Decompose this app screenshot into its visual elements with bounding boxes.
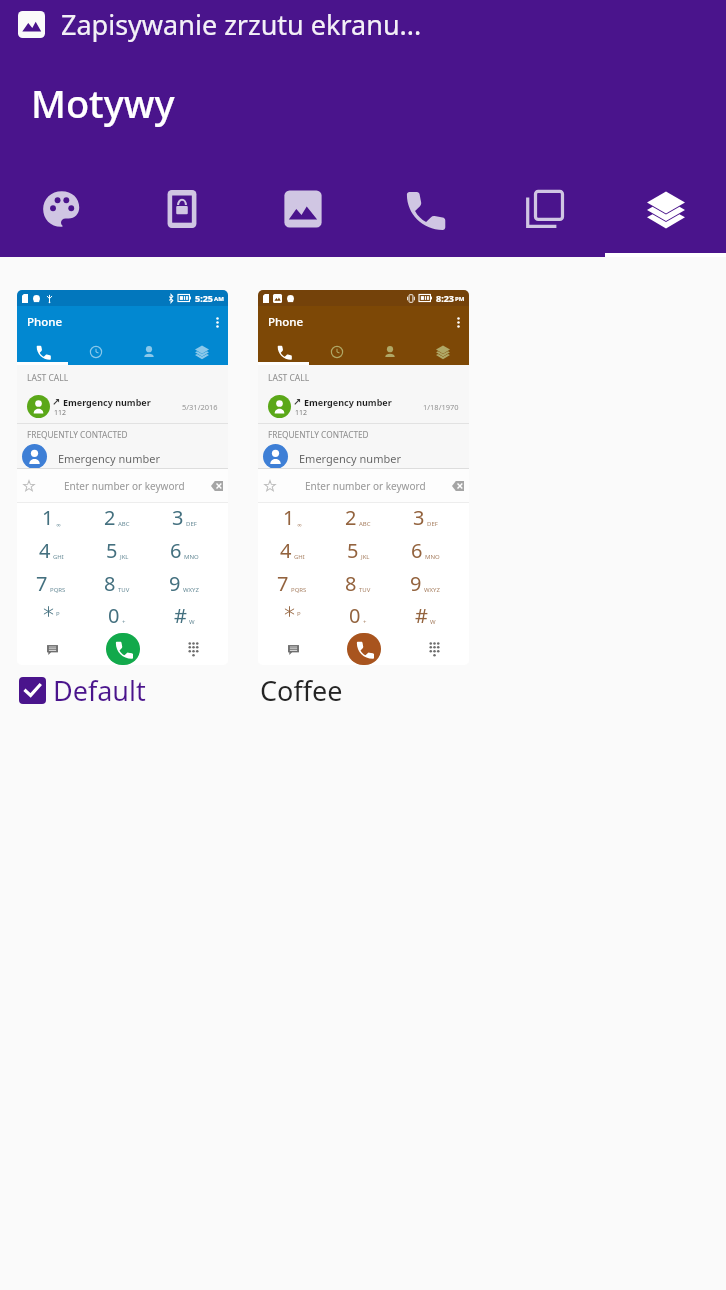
staticText: 2 xyxy=(345,504,357,531)
staticText: 0 xyxy=(108,602,120,629)
staticText: Motywy xyxy=(31,77,175,129)
staticText: TUV xyxy=(118,586,130,594)
staticText: MNO xyxy=(184,553,199,561)
staticText: Default xyxy=(53,672,146,709)
staticText: JKL xyxy=(361,553,370,561)
staticText: # xyxy=(174,602,187,629)
staticText: Enter number or keyword xyxy=(305,479,426,493)
staticText: ∞ xyxy=(56,521,61,528)
staticText: 0 xyxy=(349,602,361,629)
staticText: PQRS xyxy=(50,586,66,594)
staticText: 3 xyxy=(172,504,184,531)
staticText: W xyxy=(430,618,436,626)
button[interactable]: Wallpapers xyxy=(242,176,363,242)
staticText: GHI xyxy=(294,553,305,561)
staticText: WXYZ xyxy=(183,586,199,594)
staticText: Emergency number xyxy=(299,451,401,466)
staticText: 5 xyxy=(106,537,118,564)
staticText: 8 xyxy=(104,570,116,597)
staticText: Phone xyxy=(268,314,304,330)
staticText: JKL xyxy=(120,553,129,561)
button[interactable]: Dialer xyxy=(363,176,484,242)
staticText: 6 xyxy=(411,537,423,564)
staticText: 5:25 xyxy=(195,292,213,304)
staticText: 2 xyxy=(104,504,116,531)
staticText: ABC xyxy=(359,520,371,528)
staticText: AM xyxy=(214,295,224,303)
button[interactable]: Coffee xyxy=(258,665,469,715)
staticText: 8 xyxy=(345,570,357,597)
button[interactable]: Layers xyxy=(605,176,726,242)
staticText: ∞ xyxy=(297,521,302,528)
staticText: Emergency number xyxy=(58,451,160,466)
staticText: + xyxy=(363,618,367,626)
staticText: Phone xyxy=(27,314,63,330)
staticText: 1 xyxy=(283,504,295,531)
staticText: DEF xyxy=(427,520,438,528)
staticText: LAST CALL xyxy=(268,372,310,384)
button[interactable]: 8:23 xyxy=(258,290,469,715)
staticText: 7 xyxy=(36,570,48,597)
staticText: FREQUENTLY CONTACTED xyxy=(27,429,128,440)
staticText: FREQUENTLY CONTACTED xyxy=(268,429,369,440)
staticText: PM xyxy=(455,295,465,303)
staticText: 112 xyxy=(295,408,308,418)
staticText: 9 xyxy=(169,570,181,597)
staticText: Zapisywanie zrzutu ekranu... xyxy=(61,6,422,43)
staticText: WXYZ xyxy=(424,586,440,594)
button[interactable]: Default xyxy=(17,665,228,715)
staticText: 6 xyxy=(170,537,182,564)
button[interactable]: Overview xyxy=(484,176,605,242)
button[interactable]: Lock screen xyxy=(121,176,242,242)
button[interactable]: Themes xyxy=(0,176,121,242)
button[interactable]: 5:25 xyxy=(17,290,228,715)
staticText: Enter number or keyword xyxy=(64,479,185,493)
staticText: P xyxy=(297,610,301,618)
staticText: # xyxy=(415,602,428,629)
staticText: W xyxy=(189,618,195,626)
staticText: 8:23 xyxy=(436,292,454,304)
staticText: 5 xyxy=(347,537,359,564)
staticText: 1/18/1970 xyxy=(423,402,459,412)
staticText: 4 xyxy=(39,537,51,564)
staticText: Emergency number xyxy=(304,396,392,408)
staticText: DEF xyxy=(186,520,197,528)
staticText: Emergency number xyxy=(63,396,151,408)
staticText: P xyxy=(56,610,60,618)
staticText: TUV xyxy=(359,586,371,594)
staticText: 5/31/2016 xyxy=(182,402,218,412)
staticText: PQRS xyxy=(291,586,307,594)
staticText: Coffee xyxy=(260,672,343,709)
staticText: LAST CALL xyxy=(27,372,69,384)
staticText: GHI xyxy=(53,553,64,561)
staticText: 112 xyxy=(54,408,67,418)
staticText: MNO xyxy=(425,553,440,561)
staticText: 3 xyxy=(413,504,425,531)
staticText: 1 xyxy=(42,504,54,531)
staticText: 4 xyxy=(280,537,292,564)
staticText: ABC xyxy=(118,520,130,528)
staticText: 7 xyxy=(277,570,289,597)
staticText: + xyxy=(122,618,126,626)
staticText: 9 xyxy=(410,570,422,597)
